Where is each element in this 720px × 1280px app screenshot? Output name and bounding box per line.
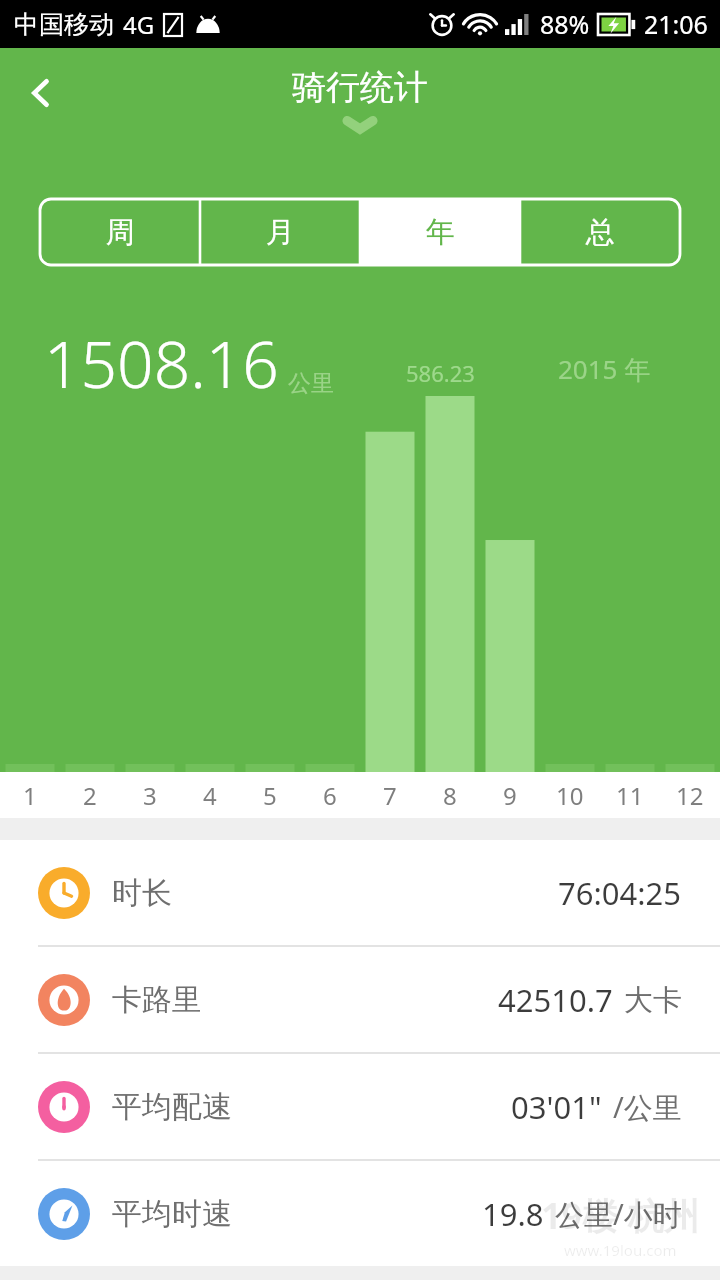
staticText: 总 bbox=[586, 214, 615, 251]
button[interactable]: 卡路里 bbox=[0, 947, 720, 1052]
button[interactable]: 总 bbox=[520, 199, 680, 265]
staticText: www.19lou.com bbox=[564, 1240, 677, 1260]
staticText: 76:04:25 bbox=[558, 872, 682, 914]
staticText: 12 bbox=[676, 779, 704, 812]
staticText: 5 bbox=[263, 779, 277, 812]
staticText: 中国移动 bbox=[14, 9, 114, 40]
staticText: 2 bbox=[83, 779, 97, 812]
staticText: 公里/小时 bbox=[555, 1194, 682, 1234]
button[interactable]: 平均时速 bbox=[0, 1161, 720, 1266]
staticText: 时长 bbox=[112, 874, 172, 912]
staticText: 21:06 bbox=[644, 7, 708, 41]
staticText: /公里 bbox=[613, 1087, 682, 1127]
staticText: 1 bbox=[23, 779, 37, 812]
staticText: 大卡 bbox=[624, 982, 682, 1019]
staticText: 骑行统计 bbox=[292, 66, 428, 109]
button[interactable]: 月 bbox=[200, 199, 360, 265]
staticText: 平均时速 bbox=[112, 1195, 232, 1233]
staticText: 7 bbox=[383, 779, 397, 812]
button[interactable]: Back bbox=[12, 64, 70, 122]
staticText: 平均配速 bbox=[112, 1088, 232, 1126]
staticText: 4G bbox=[123, 8, 155, 41]
staticText: 6 bbox=[323, 779, 337, 812]
staticText: 9 bbox=[503, 779, 517, 812]
staticText: 88% bbox=[540, 7, 590, 41]
staticText: 586.23 bbox=[406, 358, 475, 388]
staticText: 周 bbox=[106, 214, 135, 251]
staticText: 11 bbox=[616, 779, 644, 812]
staticText: 03'01" bbox=[511, 1086, 602, 1128]
staticText: 42510.7 bbox=[498, 979, 613, 1021]
staticText: 1508.16 bbox=[44, 320, 279, 407]
staticText: 8 bbox=[443, 779, 457, 812]
staticText: 2015 年 bbox=[558, 351, 651, 387]
staticText: 4 bbox=[203, 779, 217, 812]
staticText: 公里 bbox=[288, 369, 334, 398]
staticText: 月 bbox=[266, 214, 295, 251]
staticText: 卡路里 bbox=[112, 981, 202, 1019]
button[interactable]: Expand period bbox=[334, 111, 386, 137]
staticText: 3 bbox=[143, 779, 157, 812]
staticText: 19.8 bbox=[482, 1193, 544, 1235]
button[interactable]: 年 bbox=[360, 199, 520, 265]
button[interactable]: 时长 bbox=[0, 840, 720, 945]
staticText: 年 bbox=[426, 214, 455, 251]
staticText: 19楼 杭州 bbox=[541, 1191, 700, 1240]
staticText: 10 bbox=[556, 779, 584, 812]
button[interactable]: 平均配速 bbox=[0, 1054, 720, 1159]
button[interactable]: 周 bbox=[40, 199, 200, 265]
